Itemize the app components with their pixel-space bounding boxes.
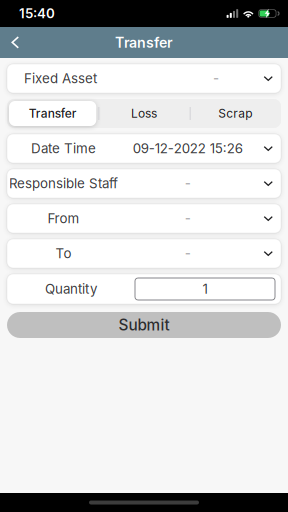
- button[interactable]: Transfer: [7, 99, 98, 128]
- button[interactable]: Responsible Staff: [7, 169, 281, 198]
- button[interactable]: Submit: [7, 312, 281, 338]
- staticText: -: [185, 175, 191, 191]
- staticText: Date Time: [31, 140, 96, 156]
- button[interactable]: To: [7, 239, 281, 268]
- staticText: -: [185, 245, 191, 261]
- staticText: Transfer: [29, 106, 77, 121]
- button[interactable]: Scrap: [190, 99, 281, 128]
- staticText: From: [47, 210, 79, 226]
- button[interactable]: 1: [135, 278, 281, 300]
- staticText: 15:40: [19, 5, 55, 21]
- button[interactable]: Date Time: [7, 134, 281, 163]
- staticText: Submit: [118, 316, 169, 334]
- staticText: Loss: [131, 106, 157, 121]
- staticText: -: [185, 210, 191, 226]
- staticText: 09-12-2022 15:26: [133, 140, 243, 156]
- staticText: Responsible Staff: [9, 175, 118, 191]
- staticText: Fixed Asset: [24, 70, 97, 86]
- staticText: Quantity: [45, 281, 97, 297]
- staticText: -: [213, 70, 219, 86]
- staticText: Scrap: [218, 106, 252, 121]
- staticText: 1: [202, 281, 207, 297]
- button[interactable]: Back: [0, 27, 31, 58]
- staticText: Transfer: [115, 34, 173, 51]
- button[interactable]: Loss: [98, 99, 190, 128]
- button[interactable]: From: [7, 204, 281, 233]
- button[interactable]: Fixed Asset: [7, 64, 281, 93]
- staticText: To: [55, 245, 71, 261]
